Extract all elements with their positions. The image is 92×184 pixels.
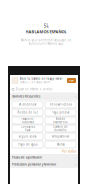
button[interactable]: Buscar un trámite o servicio <box>10 86 78 93</box>
button[interactable]: Renovar licencia <box>45 101 76 108</box>
button[interactable]: Pasos de aportación <box>10 154 78 161</box>
staticText: Recibo de luz <box>17 111 37 114</box>
staticText: Pago predial <box>51 111 69 114</box>
button[interactable]: Ver todos <box>10 149 78 154</box>
staticText: › <box>75 162 76 167</box>
button[interactable]: Acta de <box>45 117 76 124</box>
button[interactable]: Alta patronal <box>45 133 76 140</box>
button[interactable]: Mi credencial <box>12 101 43 108</box>
staticText: Sí, <box>43 22 48 29</box>
staticText: HABLAMOS ESPAÑOL <box>25 29 66 34</box>
button[interactable]: Pago predial <box>45 109 76 116</box>
staticText: Acta de <box>55 117 65 120</box>
button[interactable]: Seguro social <box>12 133 43 140</box>
staticText: fiscal <box>24 128 30 132</box>
staticText: Mi credencial <box>18 103 36 106</box>
staticText: Abre tu trámite en la app móvil <box>19 77 62 80</box>
button[interactable]: Abre tu trámite en la app móvil <box>10 75 78 86</box>
staticText: › <box>75 94 76 99</box>
staticText: Pago de agua <box>18 143 37 146</box>
staticText: domicilio <box>54 128 67 132</box>
staticText: Seguro social <box>18 135 36 138</box>
button[interactable]: Recibo de luz <box>12 109 43 116</box>
staticText: Renovar licencia <box>49 103 71 106</box>
button[interactable]: Pago de agua <box>12 141 43 148</box>
button[interactable]: Multas <box>45 141 76 148</box>
button[interactable]: Constancia <box>12 125 43 132</box>
staticText: Pasos de aportación <box>12 156 42 159</box>
button[interactable]: Protección personal y familiar <box>10 161 78 168</box>
staticText: cita previa <box>21 120 33 124</box>
button[interactable]: Pasaporte: <box>12 117 43 124</box>
staticText: AutoCount's Mobile app <box>28 42 63 45</box>
staticText: Constancia <box>20 125 34 128</box>
staticText: Trámites frecuentes <box>12 95 40 98</box>
staticText: Multas <box>56 143 64 146</box>
staticText: VER <box>69 79 74 82</box>
staticText: Work in your preferred language on <box>20 38 71 42</box>
staticText: Pasaporte: <box>20 117 34 120</box>
staticText: nacimiento <box>53 120 68 124</box>
staticText: Protección personal y familiar <box>12 163 56 166</box>
staticText: › <box>75 155 76 160</box>
button[interactable]: Cambio de <box>45 125 76 132</box>
staticText: Gratis — en App Store <box>19 80 50 84</box>
button[interactable]: Trámites frecuentes <box>10 93 78 100</box>
staticText: Buscar un trámite o servicio <box>16 87 53 91</box>
staticText: Cambio de <box>53 125 68 128</box>
staticText: Ver todos <box>62 150 76 153</box>
staticText: Alta patronal <box>52 135 69 138</box>
